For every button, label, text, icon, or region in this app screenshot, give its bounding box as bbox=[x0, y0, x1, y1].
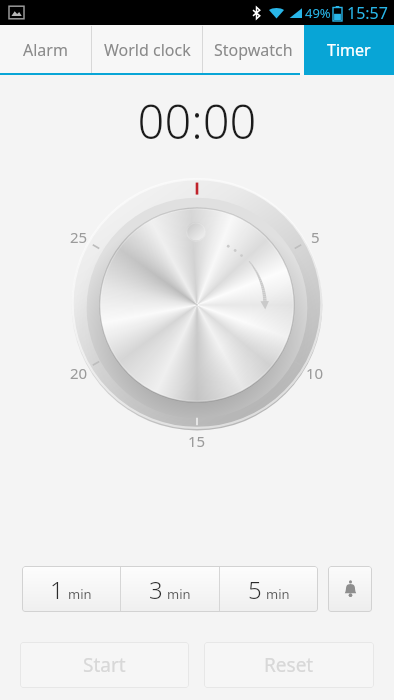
staticText: 15 bbox=[188, 431, 206, 451]
staticText: 15:57 bbox=[347, 2, 388, 24]
button[interactable]: World clock bbox=[92, 25, 202, 75]
staticText: Timer bbox=[327, 39, 371, 61]
staticText: min bbox=[266, 585, 290, 603]
staticText: Stopwatch bbox=[214, 39, 293, 61]
button[interactable]: Stopwatch bbox=[203, 25, 304, 75]
staticText: min bbox=[167, 585, 191, 603]
button[interactable]: 5 bbox=[220, 566, 318, 612]
staticText: 5 bbox=[248, 573, 262, 606]
staticText: 20 bbox=[70, 363, 88, 383]
staticText: Start bbox=[83, 652, 126, 678]
button[interactable]: Timer dial bbox=[52, 160, 342, 450]
staticText: 3 bbox=[149, 573, 163, 606]
staticText: World clock bbox=[104, 39, 191, 61]
button[interactable]: Alarm bbox=[0, 25, 91, 75]
button[interactable]: 3 bbox=[121, 566, 219, 612]
staticText: 49% bbox=[305, 4, 331, 22]
staticText: Alarm bbox=[23, 39, 68, 61]
button[interactable]: Alarm sound bbox=[328, 566, 372, 612]
button[interactable]: Reset bbox=[204, 642, 374, 688]
button[interactable]: Timer bbox=[304, 25, 394, 75]
staticText: 1 bbox=[50, 573, 64, 606]
staticText: 25 bbox=[70, 227, 88, 247]
button[interactable]: 1 bbox=[22, 566, 120, 612]
staticText: Reset bbox=[264, 652, 314, 678]
button[interactable]: Start bbox=[20, 642, 189, 688]
staticText: 10 bbox=[306, 363, 324, 383]
staticText: min bbox=[68, 585, 92, 603]
staticText: 00:00 bbox=[0, 89, 394, 153]
staticText: 5 bbox=[311, 227, 320, 247]
